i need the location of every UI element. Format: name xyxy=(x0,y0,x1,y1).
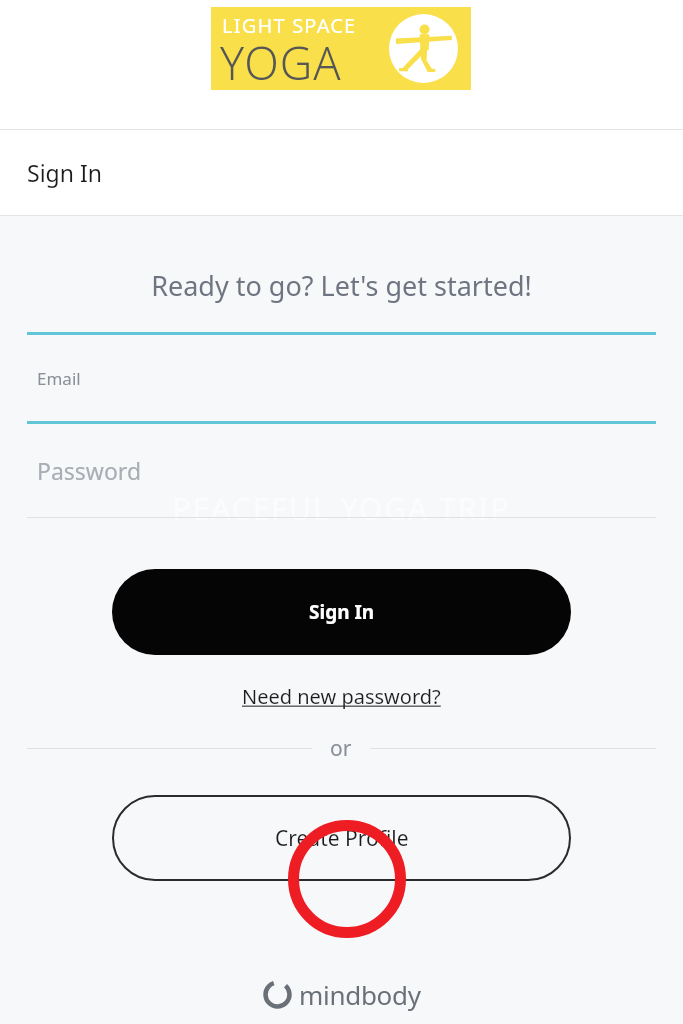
button[interactable]: Sign In xyxy=(112,569,571,655)
button[interactable]: mindbody logo xyxy=(257,975,427,1014)
button[interactable]: Create Profile xyxy=(112,795,571,881)
button[interactable]: Need new password? xyxy=(234,679,449,714)
button[interactable]: Email xyxy=(0,335,683,421)
staticText: LIGHT SPACE xyxy=(222,12,357,39)
staticText: YOGA xyxy=(220,32,342,93)
staticText: Email xyxy=(37,367,81,390)
staticText: Ready to go? Let's get started! xyxy=(0,267,683,304)
staticText: PEACEFUL YOGA TRIP xyxy=(0,488,683,529)
staticText: Sign In xyxy=(27,157,102,188)
staticText: or xyxy=(330,734,352,763)
button[interactable]: LIGHT SPACE xyxy=(211,7,471,90)
staticText: mindbody xyxy=(299,977,421,1012)
button[interactable]: Password xyxy=(0,424,683,517)
staticText: Password xyxy=(37,455,142,486)
other: mindbody logo xyxy=(263,980,292,1009)
staticText: Need new password? xyxy=(242,683,441,710)
staticText: Create Profile xyxy=(275,824,409,853)
staticText: Sign In xyxy=(309,599,375,625)
